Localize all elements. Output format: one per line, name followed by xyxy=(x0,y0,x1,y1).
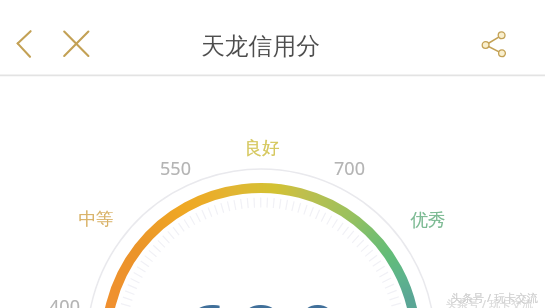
button[interactable]: Share xyxy=(476,25,512,61)
staticText: 8 xyxy=(238,277,284,308)
staticText: 6 xyxy=(182,277,228,308)
button[interactable]: Close xyxy=(58,25,94,61)
staticText: 550 xyxy=(160,156,191,181)
staticText: 400 xyxy=(49,294,80,308)
staticText: 优秀 xyxy=(410,209,446,231)
staticText: 0 xyxy=(295,277,341,308)
staticText: 头条号 / 玩卡交流 xyxy=(451,290,538,305)
button[interactable]: Back xyxy=(6,25,42,61)
staticText: 天龙信用分 xyxy=(201,31,320,61)
staticText: 头条号 / 玩卡交流 xyxy=(446,296,533,308)
staticText: 中等 xyxy=(78,208,114,230)
staticText: 700 xyxy=(334,156,365,181)
staticText: 良好 xyxy=(244,137,280,159)
